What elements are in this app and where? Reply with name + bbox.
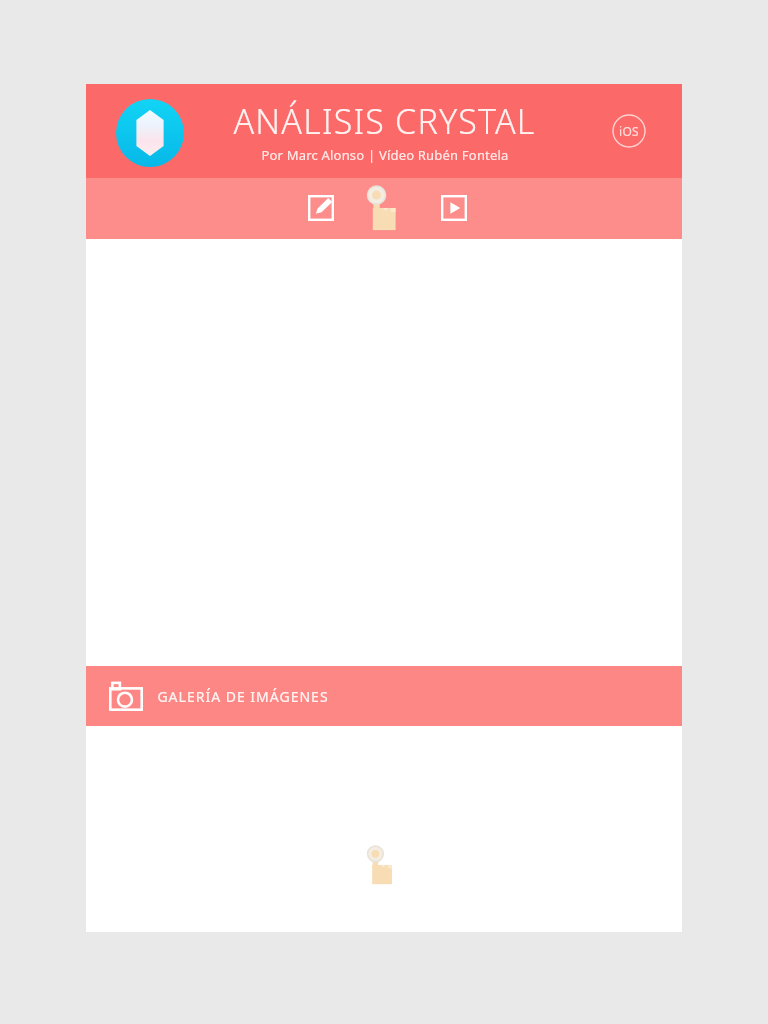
button[interactable]: Edit	[299, 186, 343, 230]
staticText: iOS	[619, 123, 639, 139]
button[interactable]: Tap	[368, 845, 394, 885]
button[interactable]: GALERÍA DE IMÁGENES	[86, 666, 682, 726]
button[interactable]: Play video	[432, 186, 476, 230]
button[interactable]: Crystal logo	[116, 99, 184, 167]
staticText: ANÁLISIS CRYSTAL	[233, 98, 536, 144]
staticText: Por Marc Alonso | Vídeo Rubén Fontela	[261, 146, 509, 164]
button[interactable]: Tap	[368, 185, 398, 231]
button[interactable]: iOS	[612, 114, 646, 148]
staticText: GALERÍA DE IMÁGENES	[157, 687, 329, 706]
